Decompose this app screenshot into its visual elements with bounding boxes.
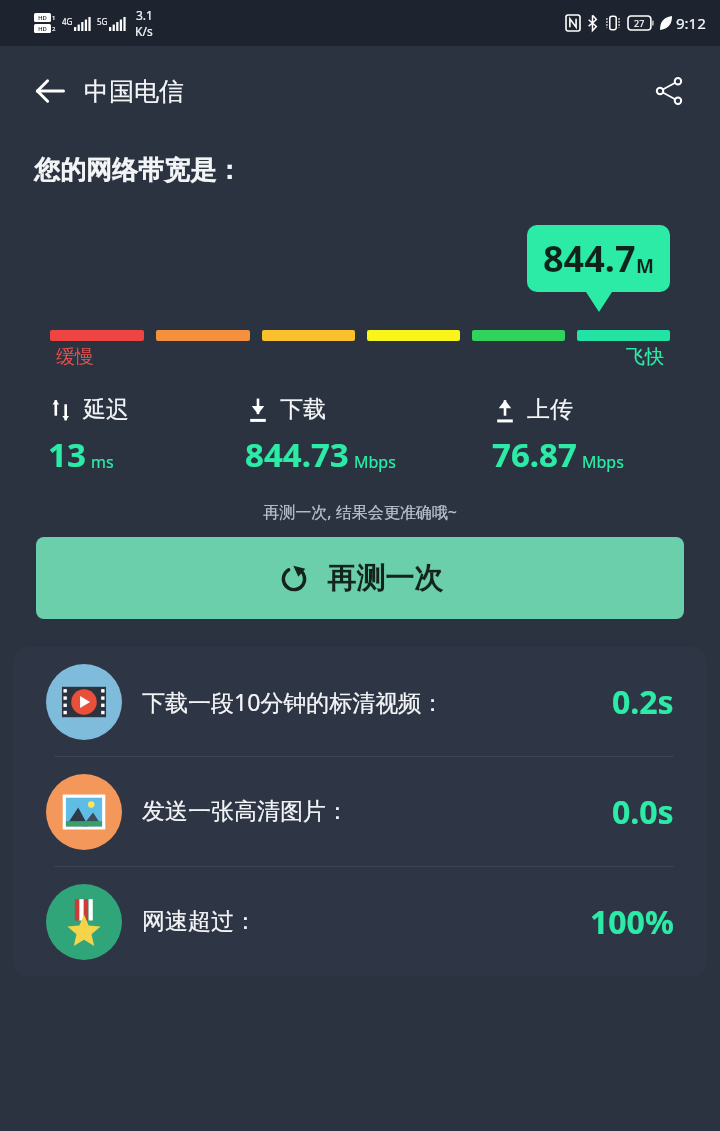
button[interactable]: 下载一段10分钟的标清视频： [14, 647, 706, 756]
staticText: 4G [62, 16, 73, 27]
staticText: 再测一次, 结果会更准确哦~ [0, 501, 720, 523]
staticText: ms [91, 451, 114, 473]
staticText: 76.87 [492, 432, 577, 477]
staticText: 13 [48, 432, 86, 477]
staticText: HD [38, 25, 47, 33]
staticText: 3.1 [136, 7, 153, 23]
staticText: 下载一段10分钟的标清视频： [142, 686, 612, 717]
button[interactable]: 网速超过： [14, 867, 706, 976]
staticText: 缓慢 [56, 345, 94, 369]
staticText: 27 [634, 17, 645, 29]
button[interactable]: 再测一次 [36, 537, 684, 619]
staticText: 上传 [527, 395, 573, 424]
button[interactable]: Back [22, 63, 78, 119]
staticText: 844.7 [543, 234, 636, 283]
staticText: 您的网络带宽是： [34, 154, 242, 187]
staticText: 延迟 [83, 395, 129, 424]
staticText: 1 [52, 14, 56, 22]
staticText: 100% [590, 900, 674, 944]
staticText: M [636, 253, 654, 279]
staticText: 网速超过： [142, 907, 590, 936]
staticText: 2 [52, 25, 56, 33]
staticText: 9:12 [676, 13, 706, 33]
staticText: 0.0s [612, 790, 674, 834]
staticText: 中国电信 [84, 76, 184, 107]
staticText: 0.2s [612, 680, 674, 724]
staticText: 5G [97, 16, 108, 27]
staticText: K/s [135, 23, 153, 39]
button[interactable]: Share [642, 64, 696, 118]
staticText: 发送一张高清图片： [142, 797, 612, 826]
staticText: Mbps [582, 451, 624, 473]
button[interactable]: 发送一张高清图片： [14, 757, 706, 866]
staticText: Mbps [354, 451, 396, 473]
staticText: 844.73 [245, 432, 349, 477]
staticText: 再测一次 [327, 560, 443, 597]
staticText: 飞快 [626, 345, 664, 369]
staticText: HD [38, 14, 47, 22]
staticText: 下载 [280, 395, 326, 424]
